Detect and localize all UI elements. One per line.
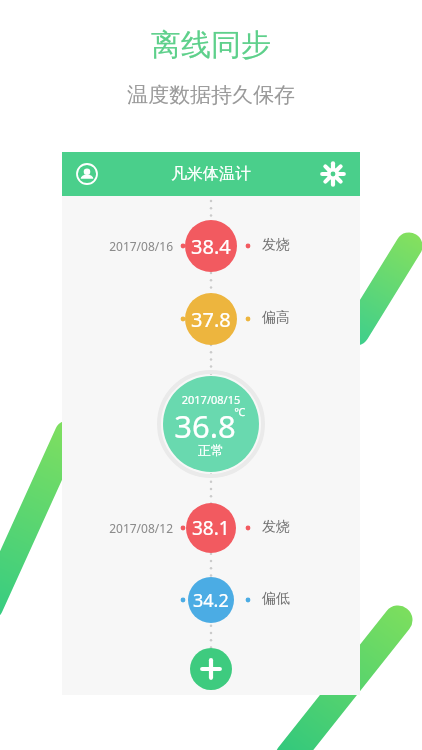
staticText: 偏高 — [262, 309, 290, 327]
button[interactable]: 2017/08/15 — [163, 376, 259, 472]
staticText: 正常 — [163, 442, 259, 472]
staticText: 37.8 — [191, 306, 231, 333]
button[interactable]: 34.2 — [188, 577, 234, 623]
button[interactable]: 38.1 — [186, 503, 236, 553]
staticText: 2017/08/15 — [163, 392, 259, 472]
staticText: 34.2 — [193, 588, 229, 613]
staticText: 发烧 — [262, 518, 290, 536]
staticText: ℃ — [192, 404, 259, 472]
button[interactable]: Add measurement — [190, 648, 232, 690]
staticText: 36.8 — [163, 405, 253, 472]
button[interactable]: Profile — [76, 163, 98, 185]
staticText: 38.4 — [191, 233, 231, 260]
staticText: 温度数据持久保存 — [0, 82, 422, 750]
button[interactable]: 37.8 — [185, 293, 237, 345]
staticText: 发烧 — [262, 236, 290, 254]
staticText: 离线同步 — [0, 26, 422, 750]
staticText: 2017/08/16 — [101, 238, 173, 256]
staticText: 偏低 — [262, 590, 290, 608]
button[interactable]: Settings — [322, 163, 344, 185]
staticText: 凡米体温计 — [62, 164, 360, 208]
staticText: 38.1 — [192, 515, 230, 541]
staticText: 2017/08/12 — [101, 520, 173, 538]
button[interactable]: 38.4 — [185, 220, 237, 272]
